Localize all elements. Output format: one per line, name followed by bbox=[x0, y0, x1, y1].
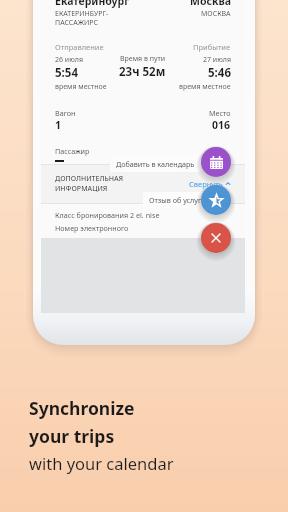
staticText: 5:46 bbox=[208, 65, 231, 81]
button[interactable]: Добавить в календарь bbox=[201, 147, 231, 177]
button[interactable]: Закрыть bbox=[201, 223, 231, 253]
button[interactable]: Отзыв об услуге bbox=[201, 185, 231, 215]
staticText: Synchronize bbox=[29, 396, 135, 420]
staticText: Отзыв об услуге bbox=[149, 195, 206, 205]
staticText: Прибытие bbox=[193, 42, 231, 52]
staticText: 27 июля bbox=[203, 55, 231, 65]
staticText: Отправление bbox=[55, 42, 104, 52]
button[interactable]: Отзыв об услуге bbox=[143, 192, 212, 208]
staticText: 5:54 bbox=[55, 65, 78, 81]
staticText: Пассажир bbox=[55, 146, 90, 156]
button[interactable]: Добавить в календарь bbox=[110, 156, 201, 172]
staticText: Номер электронного bbox=[55, 223, 129, 233]
staticText: ДОПОЛНИТЕЛЬНАЯ ИНФОРМАЦИЯ bbox=[55, 174, 189, 194]
staticText: ЕКАТЕРИНБУРГ- ПАССАЖИРС bbox=[55, 9, 109, 27]
staticText: Добавить в календарь bbox=[116, 159, 195, 169]
staticText: Время в пути bbox=[120, 54, 166, 64]
staticText: your trips bbox=[29, 424, 115, 448]
staticText: 1 bbox=[55, 118, 62, 132]
staticText: 26 июля bbox=[55, 55, 83, 65]
staticText: Свернуть bbox=[189, 179, 223, 189]
staticText: МОСКВА bbox=[201, 9, 231, 19]
button[interactable]: ДОПОЛНИТЕЛЬНАЯ ИНФОРМАЦИЯ bbox=[41, 165, 245, 203]
staticText: Класс бронирования 2 el. nise bbox=[55, 210, 160, 220]
staticText: Место bbox=[209, 108, 231, 118]
staticText: 016 bbox=[212, 118, 231, 132]
staticText: время местное bbox=[55, 82, 107, 92]
staticText: 23ч 52м bbox=[119, 64, 166, 80]
staticText: Москва bbox=[190, 0, 231, 8]
staticText: Вагон bbox=[55, 108, 76, 118]
staticText: with your calendar bbox=[29, 452, 174, 474]
staticText: время местное bbox=[179, 82, 231, 92]
staticText: Екатеринбург bbox=[55, 0, 130, 8]
